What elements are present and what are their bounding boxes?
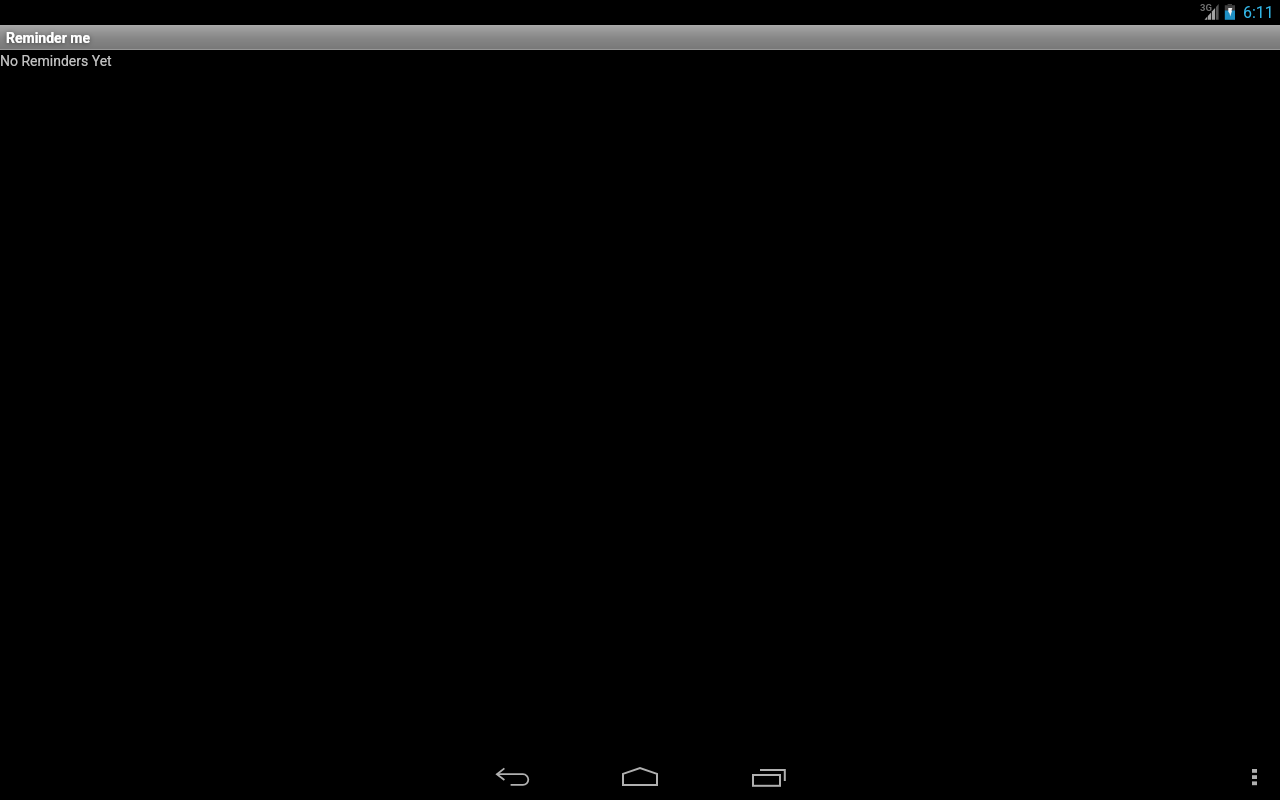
staticText: 6:11 (1243, 3, 1274, 22)
button[interactable]: More options (1228, 748, 1280, 800)
button[interactable]: Home (576, 748, 704, 800)
button[interactable]: Recent apps (704, 748, 832, 800)
staticText: Reminder me (6, 30, 90, 46)
staticText: No Reminders Yet (0, 53, 112, 69)
button[interactable]: Back (448, 748, 576, 800)
staticText: 3G (1200, 2, 1212, 13)
